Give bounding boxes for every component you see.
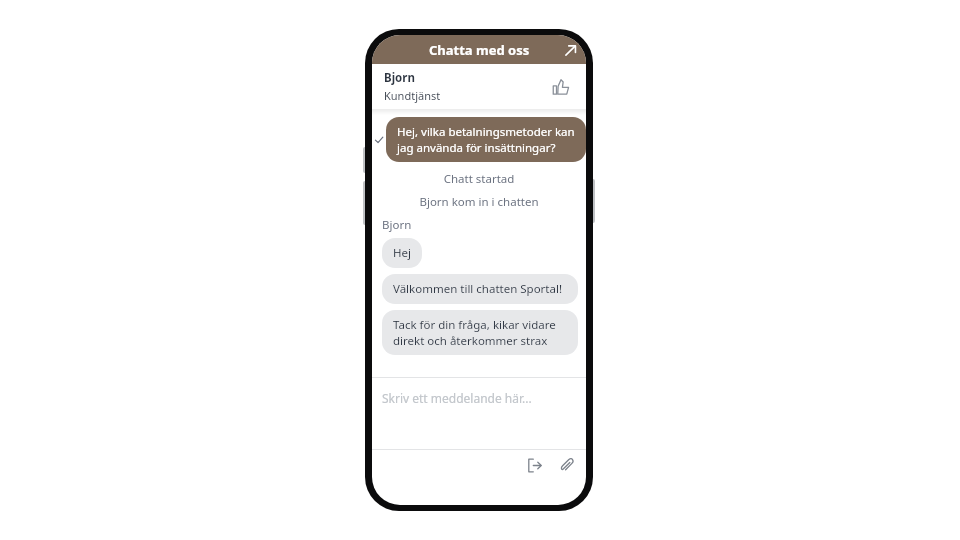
staticText: Bjorn: [382, 217, 412, 233]
staticText: Hej, vilka betalningsmetoder kan jag anv…: [397, 124, 575, 155]
button[interactable]: Tack för din fråga, kikar vidare direkt …: [393, 317, 567, 348]
staticText: Bjorn: [384, 70, 415, 86]
staticText: Bjorn kom in i chatten: [372, 194, 586, 210]
button[interactable]: Gilla: [548, 74, 574, 100]
staticText: Välkommen till chatten Sportal!: [393, 281, 563, 297]
staticText: Skriv ett meddelande här...: [382, 390, 532, 406]
button[interactable]: Välkommen till chatten Sportal!: [393, 281, 567, 297]
button[interactable]: Expandera chatt: [558, 38, 582, 62]
staticText: Hej: [393, 245, 411, 261]
staticText: Kundtjänst: [384, 88, 441, 103]
button[interactable]: Skriv ett meddelande här...: [372, 378, 586, 449]
button[interactable]: Hej, vilka betalningsmetoder kan jag anv…: [397, 124, 575, 155]
staticText: Chatt startad: [372, 171, 586, 187]
staticText: Chatta med oss: [429, 41, 530, 59]
button[interactable]: Hej: [393, 245, 411, 261]
staticText: Tack för din fråga, kikar vidare direkt …: [393, 317, 567, 348]
button[interactable]: Bifoga fil: [554, 453, 578, 477]
button[interactable]: Avsluta chatt: [522, 453, 546, 477]
